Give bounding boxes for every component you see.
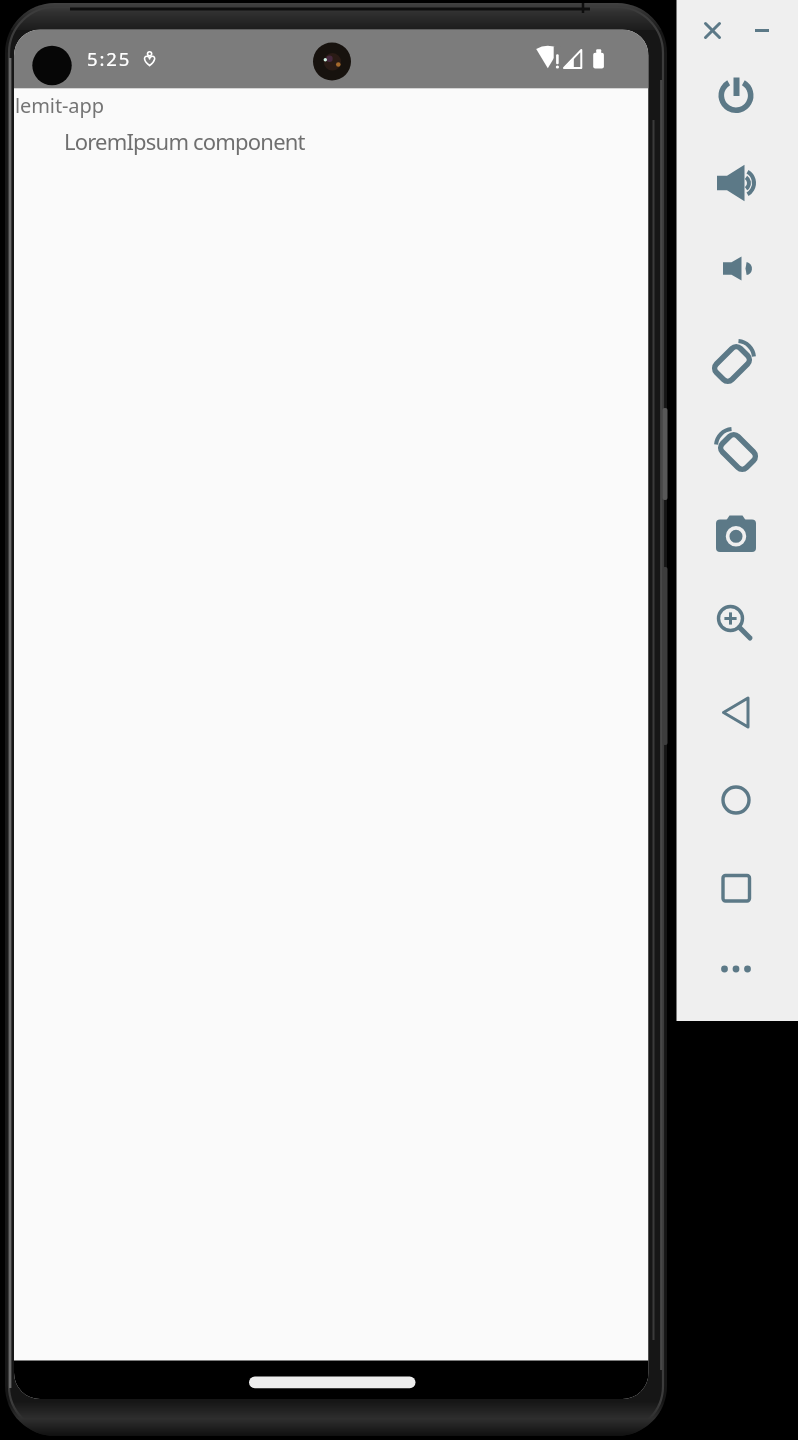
staticText: 5:25 <box>87 46 132 71</box>
staticText: lemit-app <box>15 92 104 119</box>
staticText: LoremIpsum component <box>64 126 305 156</box>
